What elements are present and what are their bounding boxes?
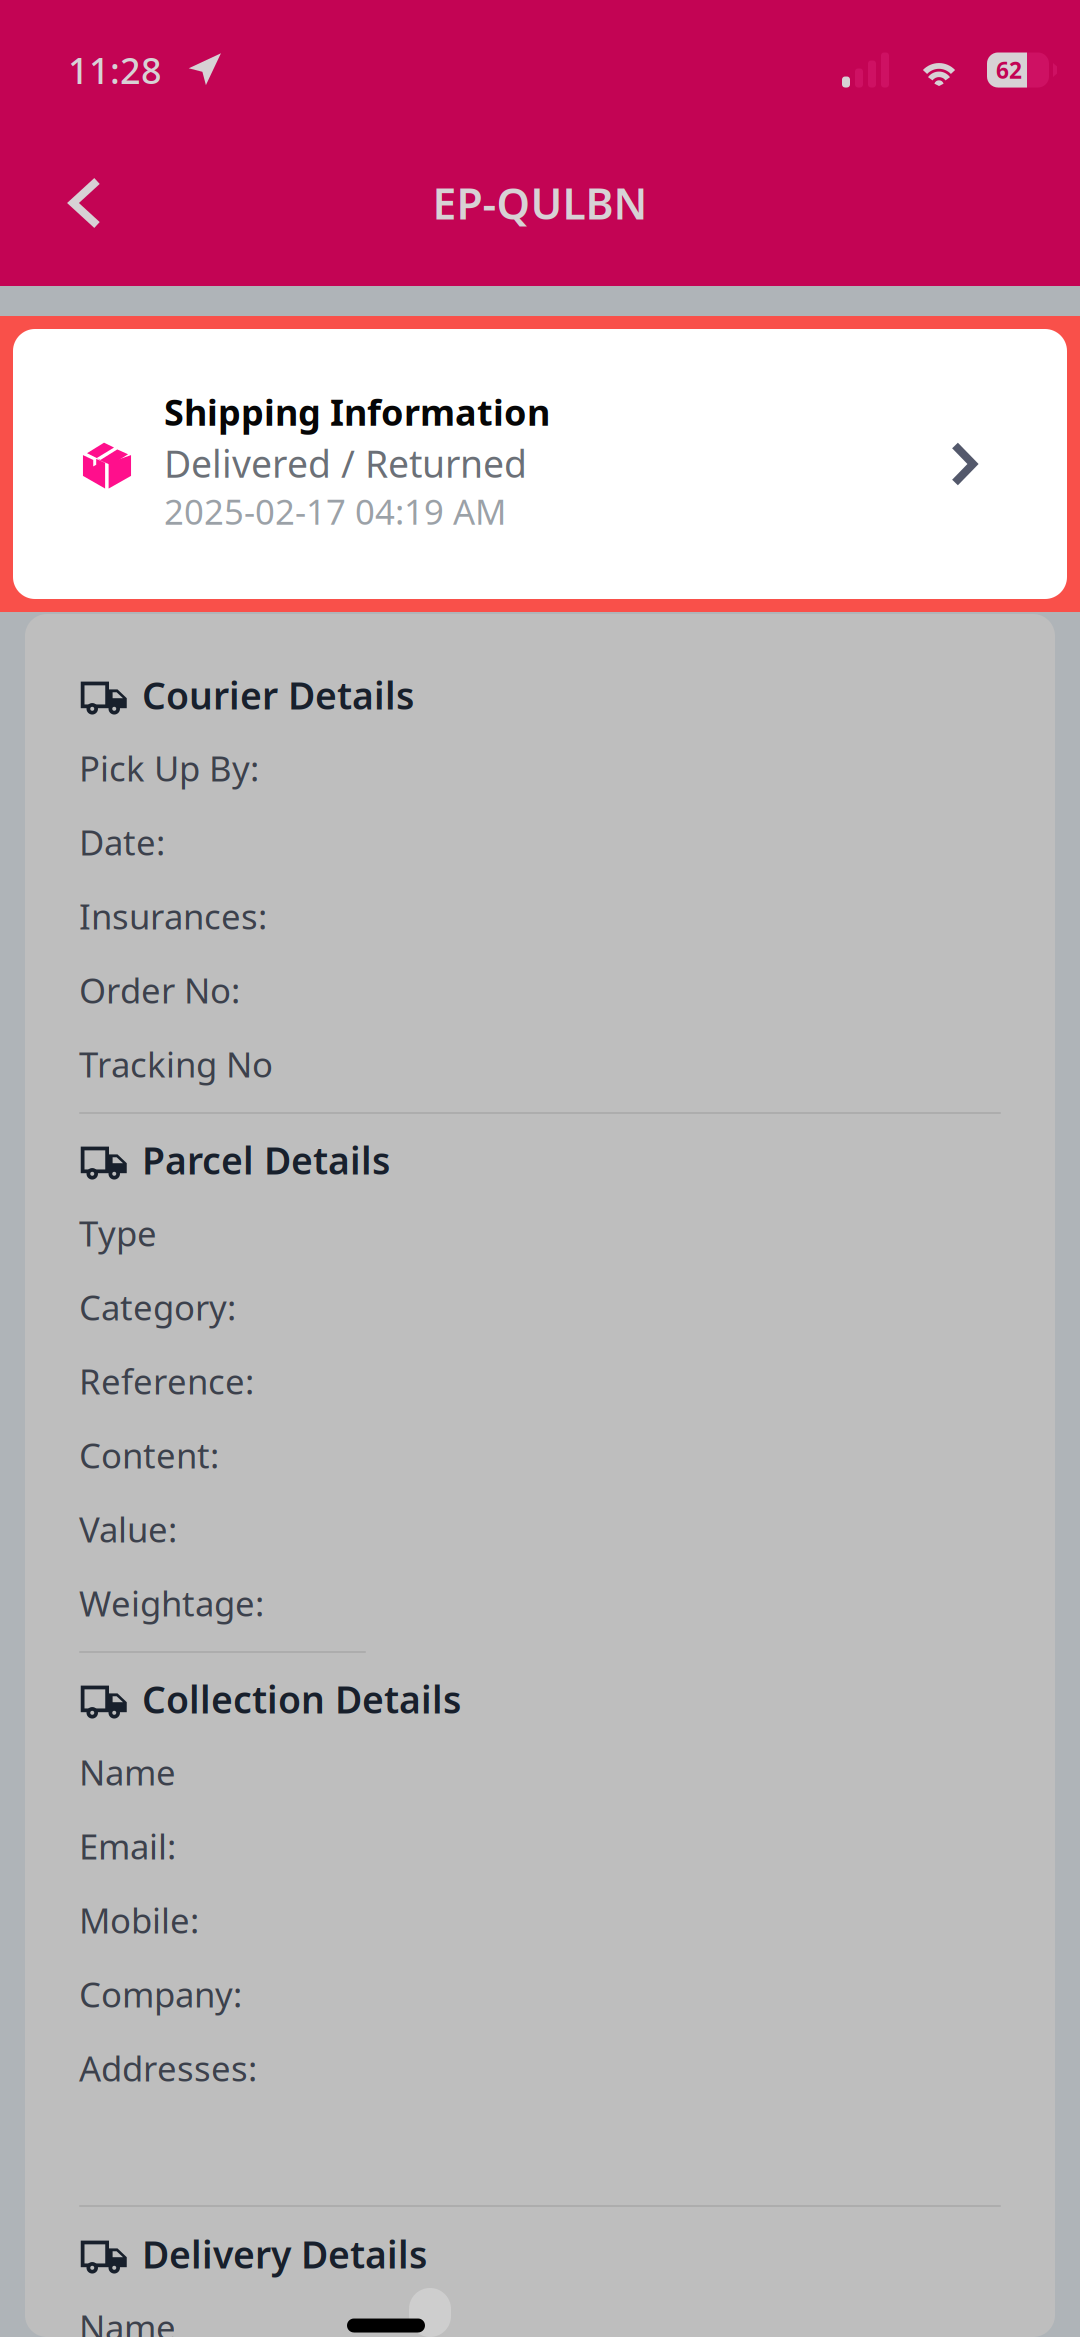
staticText: Addresses:	[79, 2045, 257, 2091]
button[interactable]: Back	[0, 149, 124, 257]
staticText: Email:	[79, 1823, 176, 1869]
staticText: 62	[996, 55, 1022, 85]
staticText: Type	[79, 1210, 157, 1256]
staticText: Date:	[79, 819, 165, 865]
button[interactable]: Shipping Information	[13, 329, 1067, 599]
staticText: Pick Up By:	[79, 745, 259, 791]
staticText: Delivery Details	[142, 2229, 427, 2279]
staticText: Weightage:	[79, 1580, 264, 1626]
staticText: Content:	[79, 1432, 219, 1478]
staticText: 11:28	[68, 46, 162, 94]
staticText: EP-QULBN	[432, 175, 647, 231]
staticText: Category:	[79, 1284, 236, 1330]
staticText: Reference:	[79, 1358, 254, 1404]
staticText: Company:	[79, 1971, 242, 2017]
staticText: Insurances:	[79, 893, 267, 939]
staticText: 2025-02-17 04:19 AM	[164, 488, 506, 534]
staticText: Collection Details	[142, 1674, 461, 1724]
staticText: Name	[79, 1749, 176, 1795]
staticText: Value:	[79, 1506, 177, 1552]
staticText: Order No:	[79, 967, 240, 1013]
staticText: Shipping Information	[164, 388, 550, 436]
staticText: Tracking No	[79, 1041, 273, 1087]
staticText: Mobile:	[79, 1897, 199, 1943]
staticText: Name	[79, 2304, 176, 2337]
staticText: Parcel Details	[142, 1135, 390, 1185]
staticText: Delivered / Returned	[164, 439, 527, 488]
staticText: Courier Details	[142, 670, 414, 720]
